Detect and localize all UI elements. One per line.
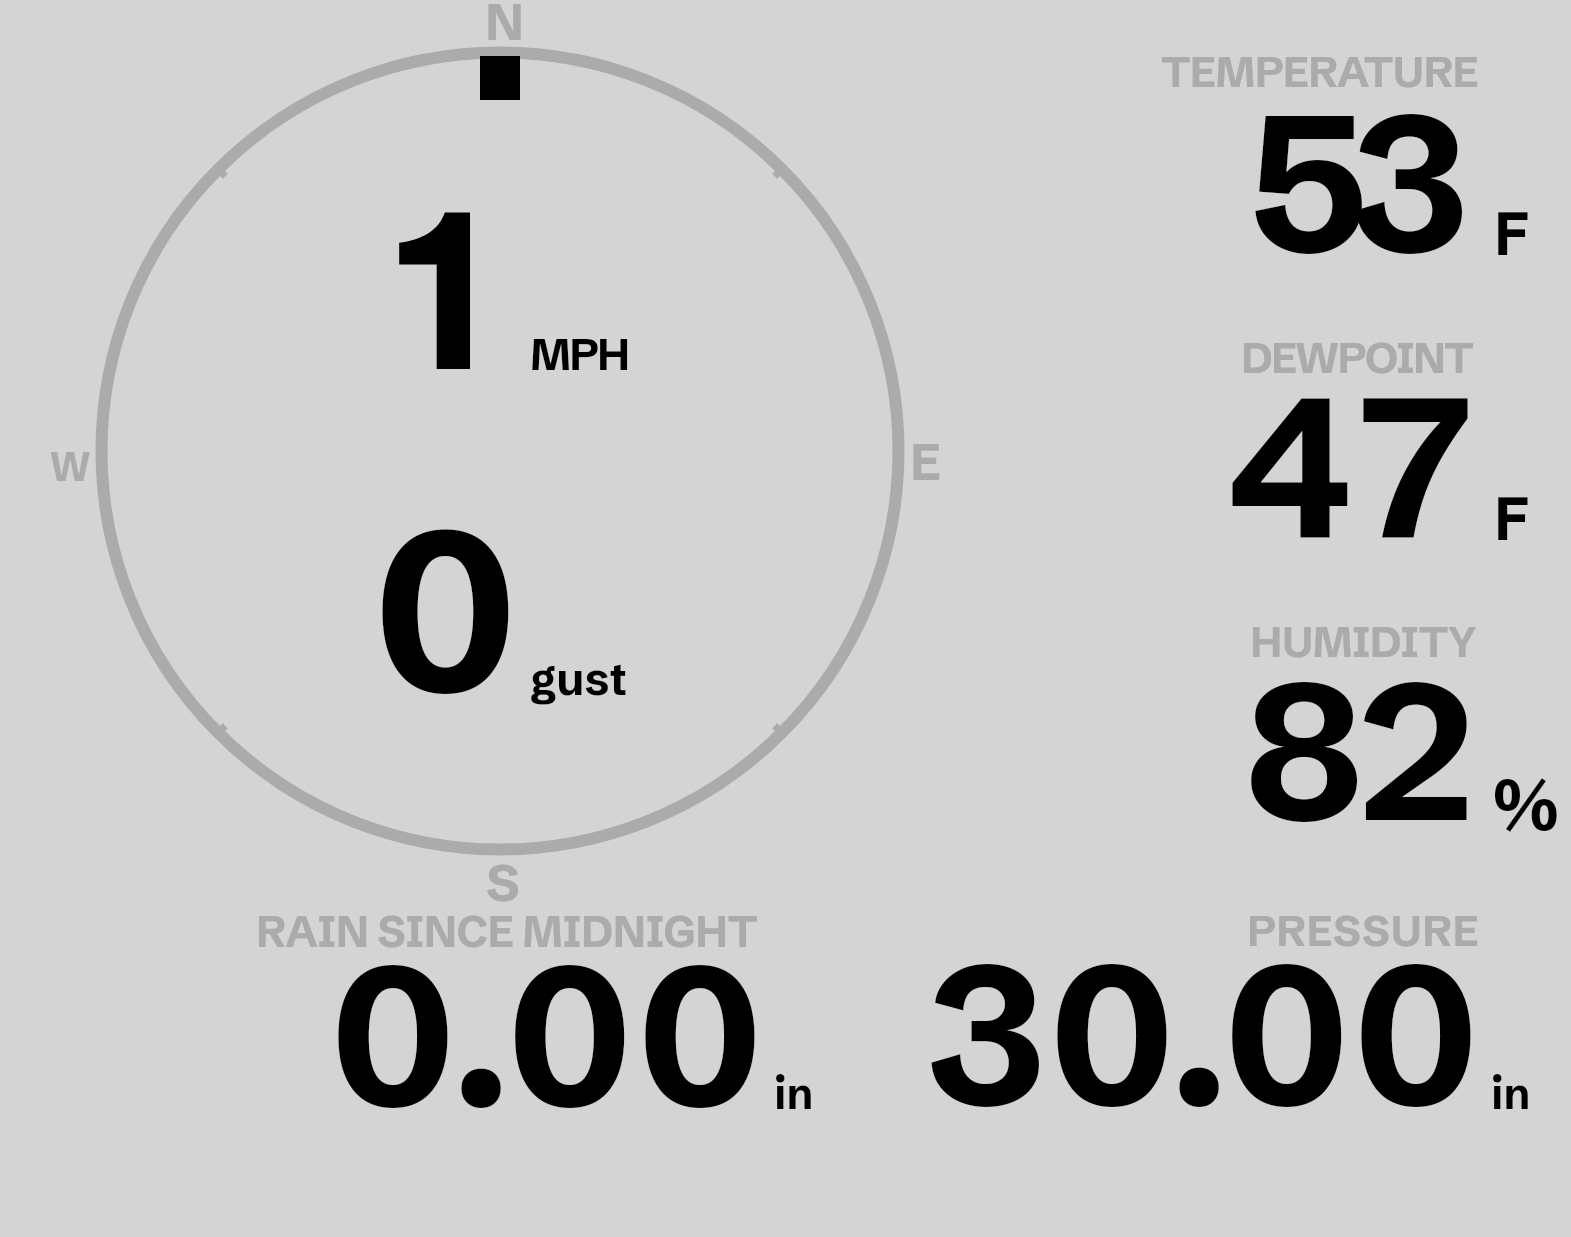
button[interactable]: Humidity 82 percent — [1100, 590, 1571, 850]
staticText: HUMIDITY — [1250, 615, 1476, 668]
staticText: in — [1491, 1066, 1531, 1120]
staticText: E — [910, 430, 941, 493]
staticText: MPH — [530, 327, 629, 381]
staticText: 53 — [1249, 64, 1451, 302]
button[interactable]: Pressure 30.00 inches — [900, 895, 1540, 1125]
staticText: RAIN SINCE MIDNIGHT — [256, 905, 758, 959]
staticText: 0 — [374, 470, 517, 749]
staticText: % — [1493, 760, 1559, 849]
button[interactable]: Dewpoint 47 degrees Fahrenheit — [1100, 305, 1571, 565]
staticText: TEMPERATURE — [1161, 45, 1478, 98]
staticText: N — [485, 0, 525, 53]
button[interactable]: Wind speed 1 MPH, gusting 0, direction n… — [40, 0, 970, 900]
staticText: 47 — [1228, 346, 1484, 589]
staticText: 82 — [1245, 632, 1470, 870]
staticText: 30.00 — [927, 914, 1479, 1156]
staticText: 0.00 — [331, 915, 764, 1157]
button[interactable]: Rain since midnight 0.00 inches — [230, 895, 830, 1125]
staticText: PRESSURE — [1247, 904, 1479, 957]
staticText: in — [774, 1066, 814, 1120]
staticText: DEWPOINT — [1241, 331, 1473, 384]
staticText: F — [1494, 481, 1530, 555]
staticText: gust — [530, 650, 627, 707]
staticText: S — [486, 850, 520, 914]
staticText: F — [1494, 196, 1530, 270]
other: Wind direction compass — [0, 0, 1571, 1237]
staticText: W — [50, 442, 91, 491]
button[interactable]: Temperature 53 degrees Fahrenheit — [1100, 20, 1571, 280]
